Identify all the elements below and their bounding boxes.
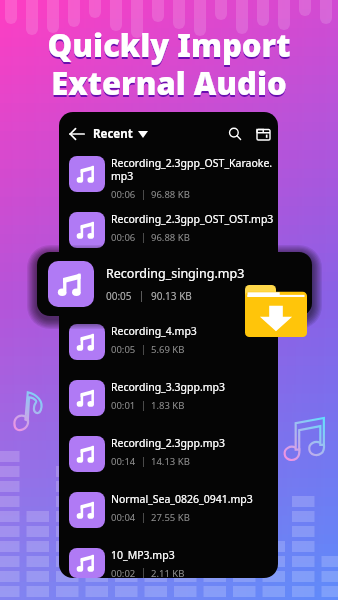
staticText: External Audio xyxy=(0,64,338,106)
staticText: 00:02 xyxy=(111,567,136,578)
button[interactable]: Download to folder xyxy=(245,285,307,337)
button[interactable]: Recording_2.3gpp_OST_OST.mp3 xyxy=(69,212,278,268)
button[interactable]: Recording_2.3gpp.mp3 xyxy=(69,436,278,492)
staticText: 90.13 KB xyxy=(151,289,192,303)
button[interactable]: Recording_4.mp3 xyxy=(69,324,278,380)
button[interactable]: Folder xyxy=(251,122,275,146)
button[interactable]: Recording_2.3gpp_OST_Karaoke.mp3 xyxy=(69,156,278,212)
button[interactable]: Recording_singing.mp3 xyxy=(37,252,312,316)
button[interactable]: Back xyxy=(64,121,90,147)
staticText: 00:06 xyxy=(111,188,136,201)
staticText: Recent xyxy=(93,126,133,142)
staticText: 00:05 xyxy=(106,289,132,303)
button[interactable]: Recording_3.3gpp.mp3 xyxy=(69,380,278,436)
staticText: Recording_3.3gpp.mp3 xyxy=(111,380,226,394)
staticText: Quickly Import xyxy=(0,26,338,68)
staticText: Recording_2.3gpp_OST_Karaoke.mp3 xyxy=(111,156,278,183)
button[interactable]: Search xyxy=(223,122,247,146)
staticText: Recording_2.3gpp_OST_OST.mp3 xyxy=(111,212,274,226)
staticText: 10_MP3.mp3 xyxy=(111,548,175,562)
staticText: 96.88 KB xyxy=(151,188,190,201)
staticText: 27.55 KB xyxy=(151,511,190,524)
button[interactable]: 10_MP3.mp3 xyxy=(69,548,278,578)
staticText: 2.11 KB xyxy=(151,567,185,578)
staticText: 00:06 xyxy=(111,231,136,244)
staticText: 00:05 xyxy=(111,287,136,300)
staticText: 1.83 KB xyxy=(151,399,185,412)
staticText: Recording_singing.mp3 xyxy=(111,268,228,282)
staticText: 96.88 KB xyxy=(151,231,190,244)
staticText: Quickly Import xyxy=(0,24,338,66)
button[interactable]: Normal_Sea_0826_0941.mp3 xyxy=(69,492,278,548)
button[interactable]: Recent xyxy=(91,120,150,148)
staticText: External Audio xyxy=(0,62,338,104)
staticText: Recording_2.3gpp.mp3 xyxy=(111,436,226,450)
staticText: 00:05 xyxy=(111,343,136,356)
staticText: Recording_4.mp3 xyxy=(111,324,197,338)
staticText: Recording_singing.mp3 xyxy=(106,265,245,282)
staticText: 00:14 xyxy=(111,455,136,468)
staticText: 5.69 KB xyxy=(151,343,185,356)
staticText: 90.13 KB xyxy=(151,287,190,300)
staticText: 14.13 KB xyxy=(151,455,190,468)
staticText: 00:04 xyxy=(111,511,136,524)
button[interactable]: Recording_singing.mp3 xyxy=(69,268,278,324)
staticText: 00:01 xyxy=(111,399,136,412)
staticText: Normal_Sea_0826_0941.mp3 xyxy=(111,492,253,506)
